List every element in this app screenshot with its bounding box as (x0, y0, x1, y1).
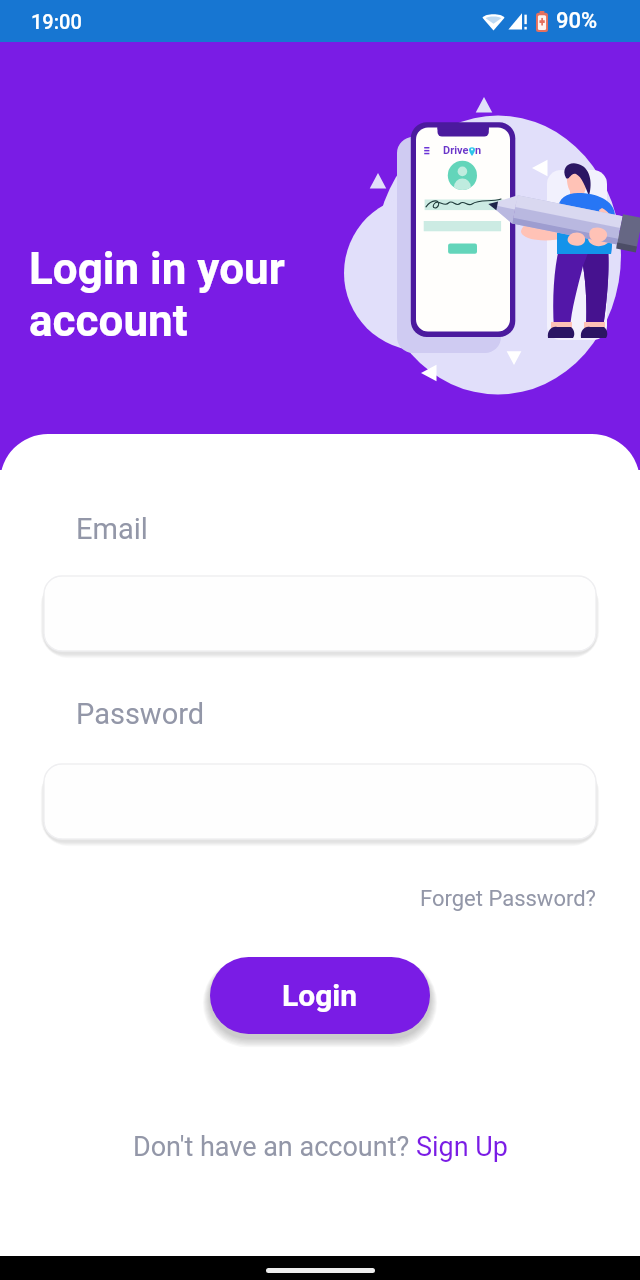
staticText: Login (282, 978, 358, 1013)
staticText: 90% (556, 8, 598, 34)
button[interactable]: Forget Password? (420, 886, 596, 912)
staticText: Forget Password? (420, 886, 596, 912)
staticText: Password (76, 697, 205, 731)
button[interactable]: Don't have an account? Sign Up (133, 1131, 508, 1163)
staticText: Don't have an account? Sign Up (133, 1131, 508, 1163)
staticText: Drive (443, 144, 469, 157)
staticText: Email (76, 512, 148, 546)
staticText: 19:00 (31, 10, 82, 33)
staticText: n (475, 144, 482, 157)
staticText: Login in your account (29, 243, 285, 347)
button[interactable]: Login (210, 957, 430, 1034)
